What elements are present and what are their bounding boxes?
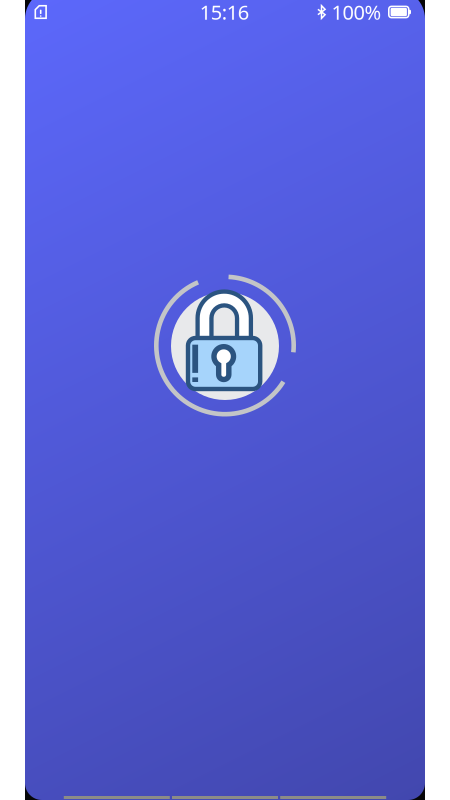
- staticText: 15:16: [200, 0, 249, 25]
- staticText: 100%: [331, 0, 381, 25]
